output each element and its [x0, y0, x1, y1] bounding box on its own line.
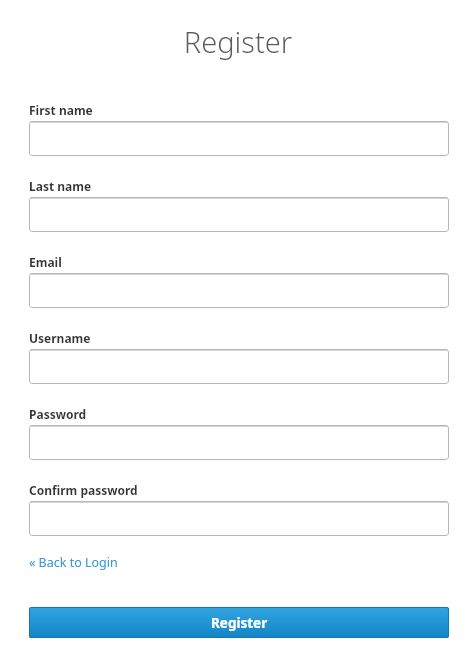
button[interactable]	[29, 197, 449, 232]
staticText: Register	[211, 614, 268, 632]
staticText: Password	[29, 406, 87, 422]
staticText: Email	[29, 254, 62, 270]
staticText: Username	[29, 330, 91, 346]
button[interactable]: « Back to Login	[29, 553, 118, 572]
staticText: Confirm password	[29, 482, 138, 498]
staticText: « Back to Login	[29, 554, 118, 571]
staticText: Last name	[29, 178, 92, 194]
staticText: Register	[28, 22, 448, 61]
button[interactable]	[29, 121, 449, 156]
button[interactable]	[29, 425, 449, 460]
button[interactable]	[29, 501, 449, 536]
button[interactable]	[29, 349, 449, 384]
button[interactable]: Register	[29, 607, 449, 638]
staticText: First name	[29, 102, 93, 118]
button[interactable]	[29, 273, 449, 308]
